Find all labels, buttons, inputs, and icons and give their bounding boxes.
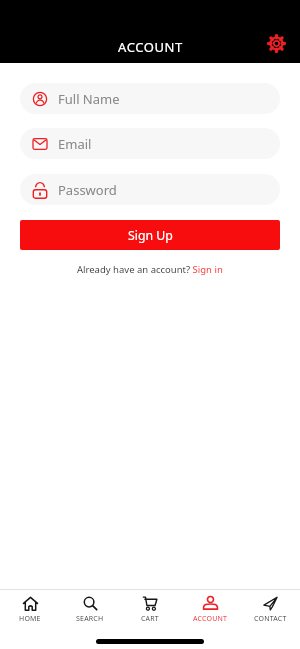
staticText: Email xyxy=(58,135,92,153)
staticText: Sign Up xyxy=(128,227,173,244)
button[interactable]: HOME xyxy=(0,596,60,624)
button[interactable] xyxy=(266,33,287,54)
button[interactable]: Already have an account? Sign in xyxy=(0,263,300,276)
staticText: Password xyxy=(58,181,117,199)
button[interactable]: CONTACT xyxy=(240,596,300,624)
button[interactable]: CART xyxy=(120,596,180,624)
staticText: HOME xyxy=(19,614,41,624)
button[interactable]: SEARCH xyxy=(60,596,120,624)
staticText: CONTACT xyxy=(254,614,287,624)
staticText: ACCOUNT xyxy=(118,38,183,56)
button[interactable]: Sign Up xyxy=(20,220,280,250)
staticText: ACCOUNT xyxy=(193,614,228,624)
button[interactable]: Email xyxy=(20,128,280,159)
staticText: Already have an account? Sign in xyxy=(77,263,223,276)
button[interactable]: Full Name xyxy=(20,83,280,114)
staticText: CART xyxy=(141,614,159,624)
staticText: Full Name xyxy=(58,90,120,108)
button[interactable]: ACCOUNT xyxy=(180,596,240,624)
button[interactable]: Password xyxy=(20,174,280,205)
staticText: SEARCH xyxy=(76,614,104,624)
